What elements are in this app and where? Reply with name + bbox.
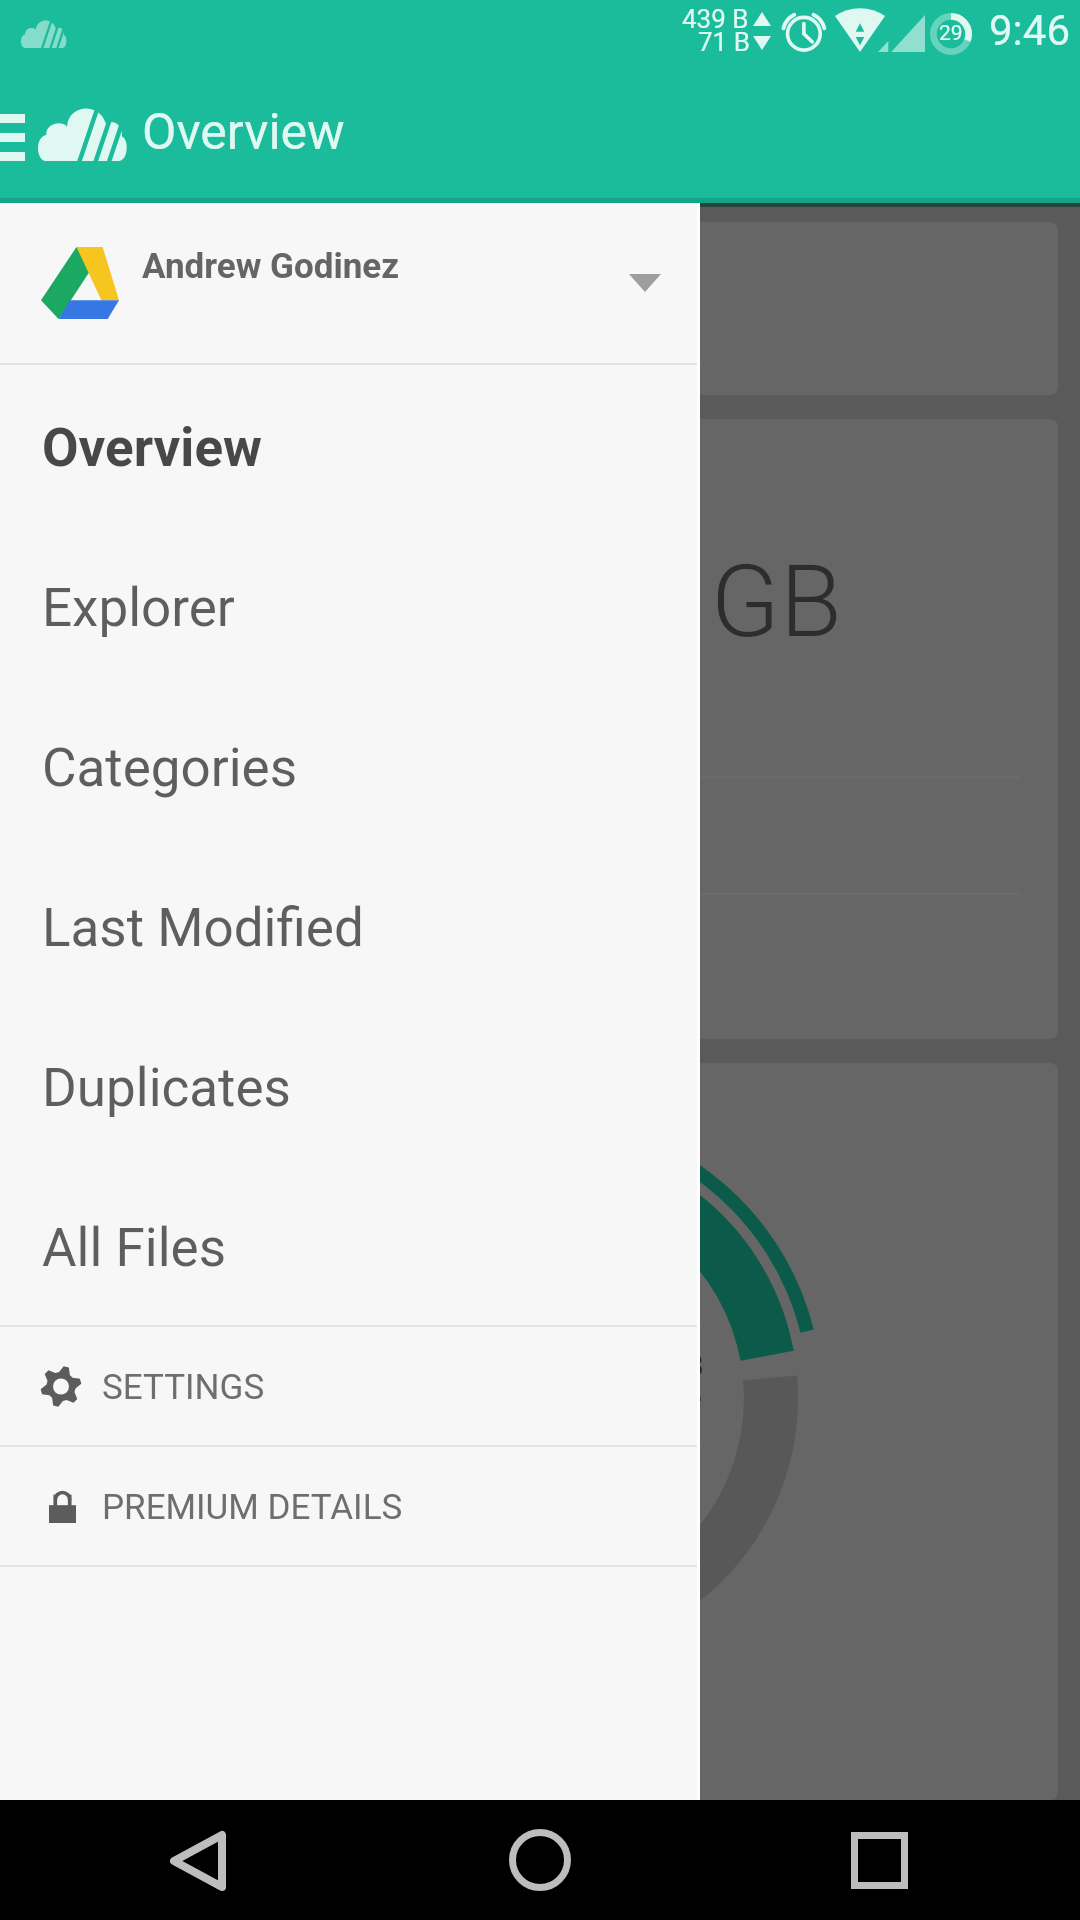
staticText: Overview xyxy=(142,103,345,162)
staticText: 1.66 GB of 7.5 GB xyxy=(468,1348,704,1383)
staticText: Explorer xyxy=(42,577,235,639)
staticText: 9:46 xyxy=(989,6,1070,55)
button[interactable]: Categories xyxy=(0,685,700,845)
staticText: All Files xyxy=(42,1217,227,1279)
button[interactable]: Explorer xyxy=(0,525,700,685)
button[interactable]: PREMIUM DETAILS xyxy=(0,1447,700,1565)
button[interactable]: Last Modified xyxy=(0,845,700,1005)
staticText: 71 B xyxy=(698,27,750,57)
staticText: Last Modified xyxy=(42,897,364,959)
button[interactable]: SETTINGS xyxy=(0,1327,700,1445)
button[interactable]: Home xyxy=(509,1829,571,1891)
button[interactable]: Overview xyxy=(0,365,700,525)
button[interactable]: Duplicates xyxy=(0,1005,700,1165)
staticText: Andrew Godinez xyxy=(142,246,399,287)
staticText: 1.66 GB xyxy=(494,542,842,660)
button[interactable]: Recent apps xyxy=(851,1832,908,1889)
staticText: Duplicates xyxy=(42,1057,291,1119)
staticText: 22 % used space xyxy=(464,1379,702,1417)
staticText: Overview xyxy=(42,417,262,479)
staticText: 439 B xyxy=(682,4,749,34)
staticText: 29 xyxy=(939,21,963,46)
button[interactable]: All Files xyxy=(0,1165,700,1325)
button[interactable]: Andrew Godinez xyxy=(0,203,700,363)
staticText: Categories xyxy=(42,737,298,799)
staticText: PREMIUM DETAILS xyxy=(102,1487,403,1528)
button[interactable]: Open navigation menu xyxy=(0,113,25,165)
staticText: SETTINGS xyxy=(102,1367,265,1408)
button[interactable]: Back xyxy=(170,1831,226,1891)
